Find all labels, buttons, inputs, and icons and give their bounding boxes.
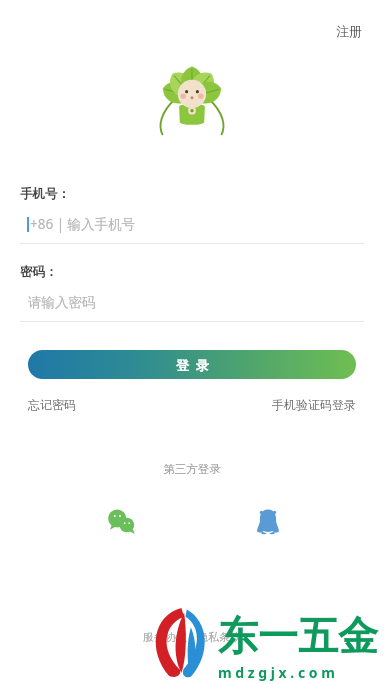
staticText: 密码： (20, 264, 58, 280)
staticText: +86 | 输入手机号 (30, 215, 136, 233)
button[interactable]: 注册 (332, 19, 366, 43)
button[interactable]: QQ login (244, 498, 292, 546)
staticText: 隐私条款 (197, 630, 241, 644)
staticText: 请输入密码 (28, 294, 96, 311)
staticText: 登 录 (176, 356, 209, 374)
staticText: 手机号： (20, 186, 70, 202)
staticText: 东一五金 (218, 611, 378, 661)
button[interactable]: 忘记密码 (26, 395, 78, 414)
button[interactable]: 手机验证码登录 (270, 395, 358, 414)
staticText: 忘记密码 (28, 397, 76, 412)
button[interactable]: +86 | 输入手机号 (20, 214, 364, 234)
button[interactable]: 请输入密码 (20, 292, 364, 312)
staticText: 服务协议 (143, 630, 187, 644)
button[interactable]: 服务协议 (143, 630, 187, 644)
staticText: 第三方登录 (0, 462, 384, 476)
button[interactable]: WeChat login (98, 498, 146, 546)
staticText: 注册 (336, 23, 362, 39)
staticText: 手机验证码登录 (272, 397, 356, 412)
button[interactable]: 登 录 (28, 350, 356, 379)
staticText: m d z g j x . c o m (218, 663, 335, 682)
button[interactable]: 隐私条款 (197, 630, 241, 644)
